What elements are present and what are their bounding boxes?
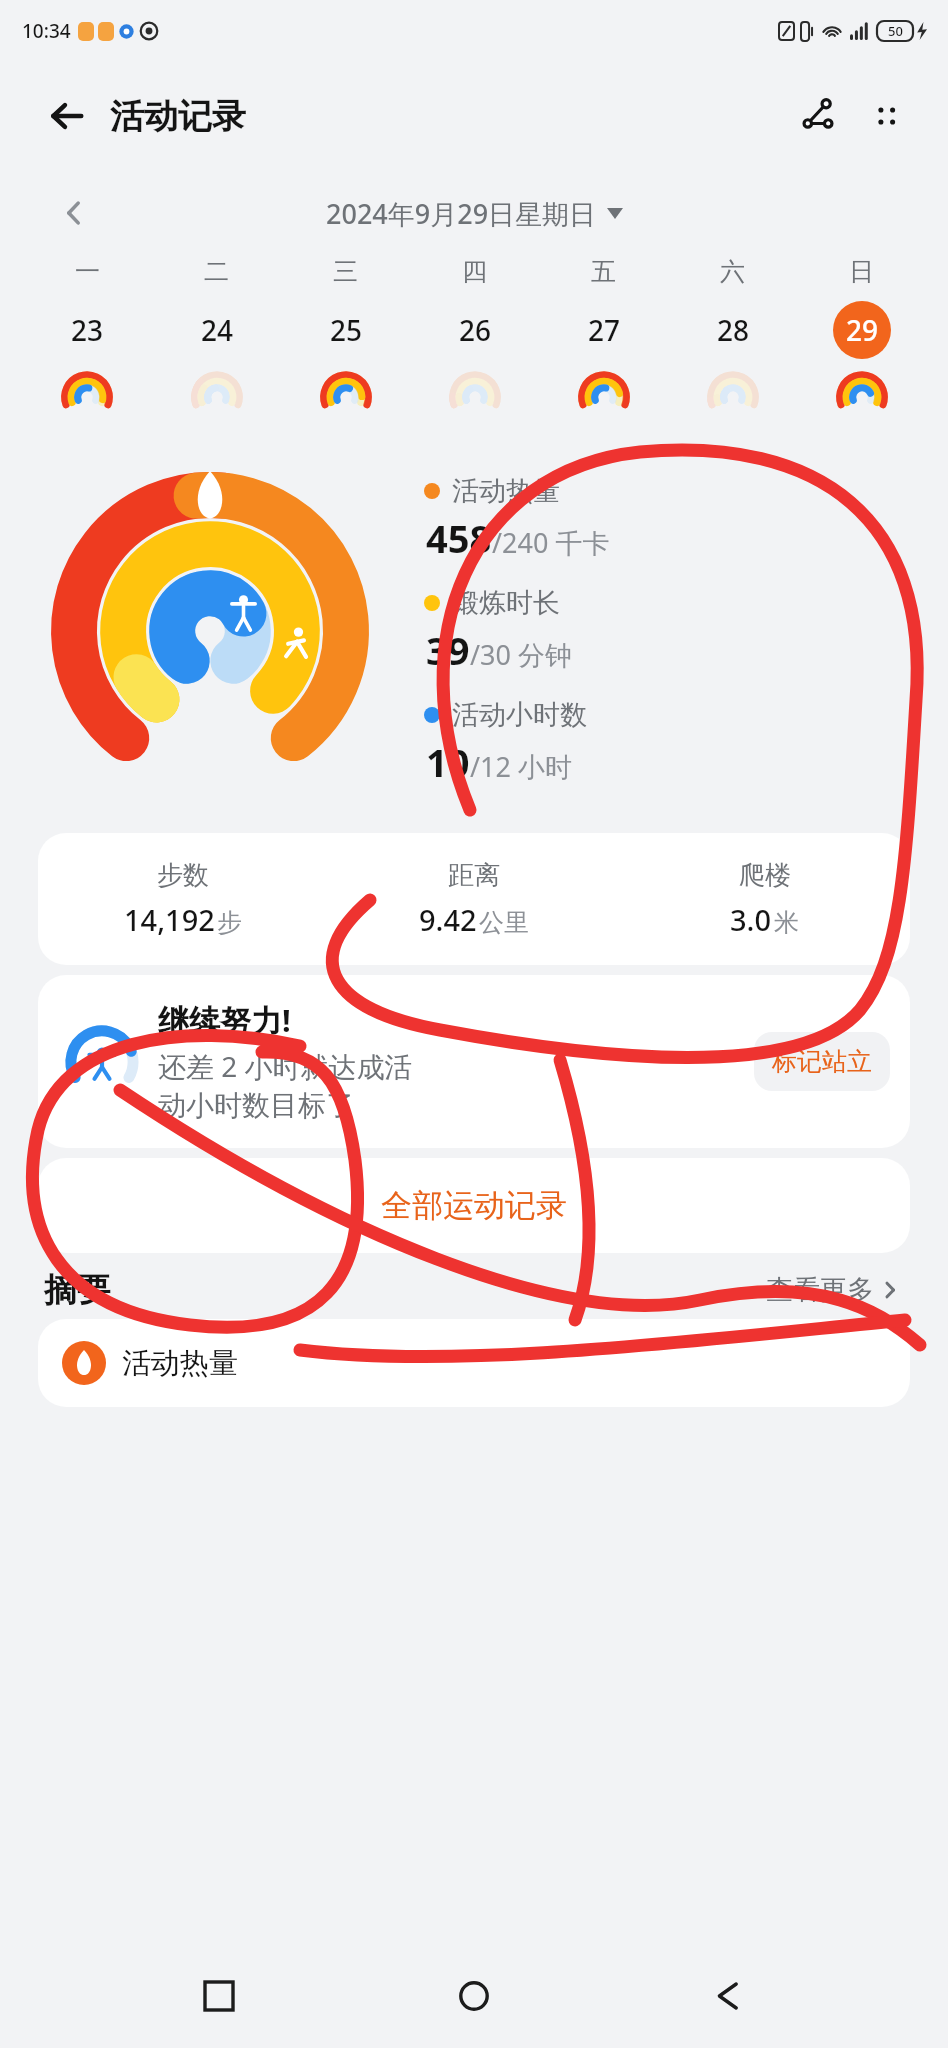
button[interactable]: 27 (539, 301, 668, 425)
button[interactable]: 24 (152, 301, 281, 425)
staticText: 9.42 (419, 900, 477, 939)
button[interactable]: 查看更多 (762, 1269, 904, 1311)
button[interactable]: 23 (22, 301, 152, 425)
staticText: /12 小时 (470, 748, 572, 785)
button[interactable]: 活动小时数 (424, 698, 932, 788)
button[interactable]: 29 (797, 301, 926, 425)
staticText: 爬楼 (739, 859, 791, 892)
button[interactable]: 前一天 (50, 189, 98, 237)
staticText: /30 分钟 (470, 636, 572, 673)
button[interactable]: 活动热量 (424, 474, 932, 564)
button[interactable]: 26 (410, 301, 539, 425)
staticText: 23 (71, 311, 104, 349)
staticText: 距离 (448, 859, 500, 892)
staticText: 锻炼时长 (452, 586, 560, 620)
button[interactable]: 活动热量 (38, 1319, 910, 1407)
staticText: 活动小时数 (452, 698, 587, 732)
staticText: 29 (846, 311, 879, 349)
staticText: 还差 2 小时就达成活 动小时数目标了 (158, 1047, 413, 1124)
staticText: 39 (426, 624, 470, 676)
staticText: 10 (426, 736, 470, 788)
staticText: 50 (888, 22, 903, 40)
staticText: 25 (330, 311, 363, 349)
staticText: 米 (774, 907, 799, 938)
button[interactable]: 分享 (790, 88, 846, 144)
staticText: /240 千卡 (492, 524, 610, 561)
staticText: 26 (459, 311, 492, 349)
staticText: 标记站立 (772, 1046, 872, 1077)
staticText: 2024年9月29日星期日 (326, 195, 597, 232)
button[interactable]: 标记站立 (754, 1032, 890, 1091)
button[interactable]: 25 (281, 301, 410, 425)
staticText: 摘要 (44, 1269, 110, 1311)
staticText: 24 (201, 311, 234, 349)
button[interactable]: 主屏幕 (438, 1960, 510, 2032)
staticText: 活动记录 (110, 95, 246, 138)
staticText: 活动热量 (452, 474, 560, 508)
button[interactable]: 2024年9月29日星期日 (320, 191, 629, 236)
button[interactable]: 步数 (38, 833, 910, 965)
staticText: 3.0 (730, 900, 772, 939)
staticText: 三 (333, 256, 358, 287)
button[interactable]: 锻炼时长 (424, 586, 932, 676)
staticText: 一 (75, 256, 100, 287)
staticText: 14,192 (124, 900, 215, 939)
button[interactable]: 继续努力! (38, 975, 910, 1148)
staticText: 日 (849, 256, 874, 287)
staticText: 27 (588, 311, 621, 349)
staticText: 六 (720, 256, 745, 287)
staticText: 步数 (157, 859, 209, 892)
staticText: 公里 (479, 907, 529, 938)
staticText: 10:34 (22, 18, 71, 44)
staticText: 全部运动记录 (381, 1186, 567, 1225)
button[interactable]: 更多选项 (858, 88, 914, 144)
staticText: 二 (204, 256, 229, 287)
button[interactable]: 返回 (693, 1960, 765, 2032)
staticText: 活动热量 (122, 1345, 238, 1382)
staticText: 28 (717, 311, 750, 349)
staticText: 步 (217, 907, 242, 938)
staticText: 查看更多 (766, 1273, 874, 1307)
staticText: 继续努力! (158, 999, 291, 1041)
button[interactable]: 28 (668, 301, 797, 425)
staticText: 四 (462, 256, 487, 287)
button[interactable]: 返回 (40, 89, 94, 143)
staticText: 五 (591, 256, 616, 287)
button[interactable]: 最近任务 (183, 1960, 255, 2032)
staticText: 458 (426, 512, 492, 564)
button[interactable]: 全部运动记录 (38, 1158, 910, 1253)
